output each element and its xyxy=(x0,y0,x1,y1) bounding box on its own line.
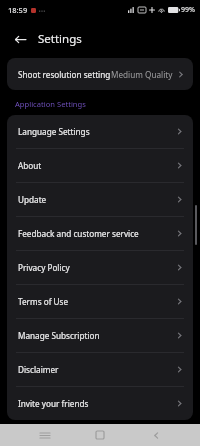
button[interactable]: Manage Subscription xyxy=(7,319,193,352)
staticText: Terms of Use xyxy=(18,296,69,307)
button[interactable]: Terms of Use xyxy=(7,285,193,318)
button[interactable]: Update xyxy=(7,183,193,216)
staticText: Shoot resolution setting xyxy=(18,69,111,80)
staticText: Disclaimer xyxy=(18,364,59,375)
staticText: Application Settings xyxy=(15,99,86,109)
staticText: Language Settings xyxy=(18,126,90,137)
staticText: Feedback and customer service xyxy=(18,228,139,239)
button[interactable]: Privacy Policy xyxy=(7,251,193,284)
button[interactable]: Disclaimer xyxy=(7,353,193,386)
button[interactable]: Home xyxy=(89,424,111,446)
staticText: Settings xyxy=(38,31,82,47)
button[interactable]: Shoot resolution setting xyxy=(7,58,193,90)
button[interactable]: Language Settings xyxy=(7,115,193,148)
staticText: Manage Subscription xyxy=(18,330,100,341)
button[interactable]: Recent apps xyxy=(34,424,56,446)
button[interactable]: About xyxy=(7,149,193,182)
staticText: Update xyxy=(18,194,47,205)
staticText: Medium Quality xyxy=(111,69,173,80)
staticText: About xyxy=(18,160,42,171)
button[interactable]: Invite your friends xyxy=(7,387,193,420)
staticText: Privacy Policy xyxy=(18,262,70,273)
button[interactable]: Back xyxy=(10,29,30,49)
staticText: 99% xyxy=(181,5,195,15)
button[interactable]: Feedback and customer service xyxy=(7,217,193,250)
button[interactable]: Back xyxy=(145,424,167,446)
staticText: Invite your friends xyxy=(18,398,89,409)
staticText: 18:59 xyxy=(8,5,28,15)
